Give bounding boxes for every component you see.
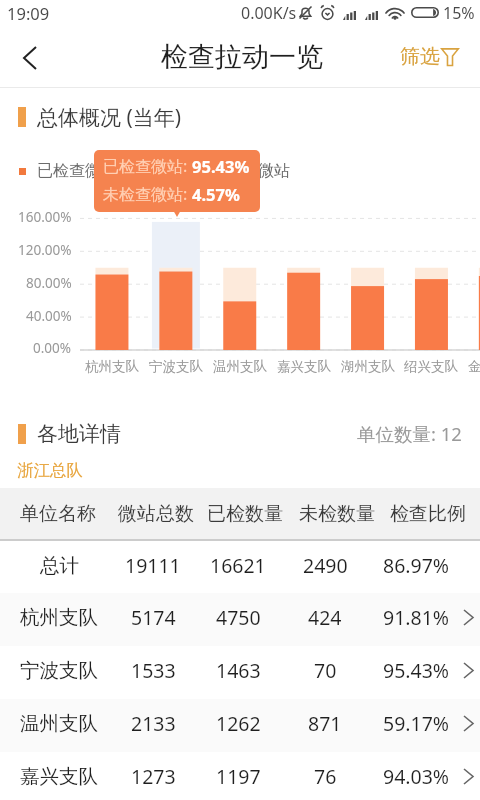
staticText: 1262 — [216, 710, 261, 737]
staticText: 19:09 — [7, 2, 50, 24]
button[interactable]: Back — [3, 32, 59, 86]
staticText: 15% — [443, 2, 475, 24]
staticText: 4750 — [216, 604, 261, 631]
staticText: 嘉兴支队 — [277, 358, 331, 375]
staticText: 1197 — [216, 763, 261, 790]
staticText: 40.00% — [26, 307, 72, 325]
staticText: 温州支队 — [20, 711, 98, 736]
staticText: 总计 — [40, 553, 79, 578]
staticText: 0.00K/s — [241, 2, 297, 24]
staticText: 湖州支队 — [341, 358, 395, 375]
staticText: 80.00% — [26, 274, 72, 292]
staticText: 4.57% — [192, 183, 240, 205]
button[interactable]: 浙江总队 — [14, 444, 86, 496]
button[interactable] — [0, 593, 480, 646]
staticText: 筛选 — [400, 44, 440, 69]
staticText: 微站总数 — [118, 502, 194, 526]
staticText: 绍兴支队 — [404, 358, 458, 375]
staticText: 91.81% — [383, 604, 450, 631]
button[interactable] — [0, 699, 480, 752]
staticText: 86.97% — [383, 552, 450, 579]
staticText: 已检数量 — [207, 502, 283, 526]
staticText: 16621 — [210, 552, 266, 579]
staticText: 浙江总队 — [17, 460, 83, 481]
staticText: 424 — [308, 604, 342, 631]
staticText: 温州支队 — [213, 358, 267, 375]
staticText: 金华支队 — [468, 358, 480, 375]
staticText: 1463 — [216, 657, 261, 684]
staticText: 单位名称 — [20, 502, 96, 526]
button[interactable] — [0, 646, 480, 699]
staticText: 已检查微站: — [103, 155, 192, 177]
button[interactable]: 筛选 — [396, 38, 463, 75]
staticText: 95.43% — [192, 155, 250, 177]
staticText: 检查比例 — [390, 502, 466, 526]
staticText: 各地详情 — [37, 421, 121, 447]
staticText: 1273 — [131, 763, 176, 790]
staticText: 嘉兴支队 — [20, 764, 98, 789]
staticText: 未检数量 — [299, 502, 375, 526]
staticText: 5174 — [131, 604, 176, 631]
staticText: 94.03% — [383, 763, 450, 790]
staticText: 2133 — [131, 710, 176, 737]
staticText: 总体概况 (当年) — [37, 103, 182, 132]
staticText: 120.00% — [18, 241, 72, 259]
staticText: 宁波支队 — [149, 358, 203, 375]
staticText: 杭州支队 — [20, 605, 98, 630]
staticText: 检查拉动一览 — [161, 40, 323, 74]
staticText: 59.17% — [383, 710, 450, 737]
staticText: 单位数量: 12 — [357, 421, 462, 446]
button[interactable] — [0, 752, 480, 800]
staticText: 宁波支队 — [20, 658, 98, 683]
staticText: 76 — [314, 763, 337, 790]
button[interactable] — [0, 541, 480, 594]
staticText: 19111 — [125, 552, 181, 579]
staticText: 未检查微站: — [103, 183, 192, 205]
staticText: 已检查微站 — [37, 161, 117, 181]
staticText: 95.43% — [383, 657, 450, 684]
staticText: 70 — [314, 657, 337, 684]
staticText: 871 — [308, 710, 342, 737]
staticText: 160.00% — [18, 208, 72, 226]
staticText: 杭州支队 — [85, 358, 139, 375]
staticText: 0.00% — [33, 339, 72, 357]
staticText: 1533 — [131, 657, 176, 684]
staticText: 2490 — [303, 552, 348, 579]
staticText: 未检查微站 — [210, 161, 290, 181]
